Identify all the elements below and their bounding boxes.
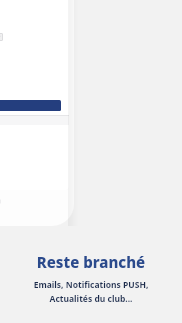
button[interactable]: Valider [0, 100, 61, 111]
staticText: Actualités du club... [8, 293, 174, 305]
staticText: Emails, Notifications PUSH, [8, 279, 174, 291]
button[interactable] [0, 33, 3, 41]
button[interactable]: Home [0, 195, 1, 208]
staticText: Reste branché [8, 252, 174, 272]
